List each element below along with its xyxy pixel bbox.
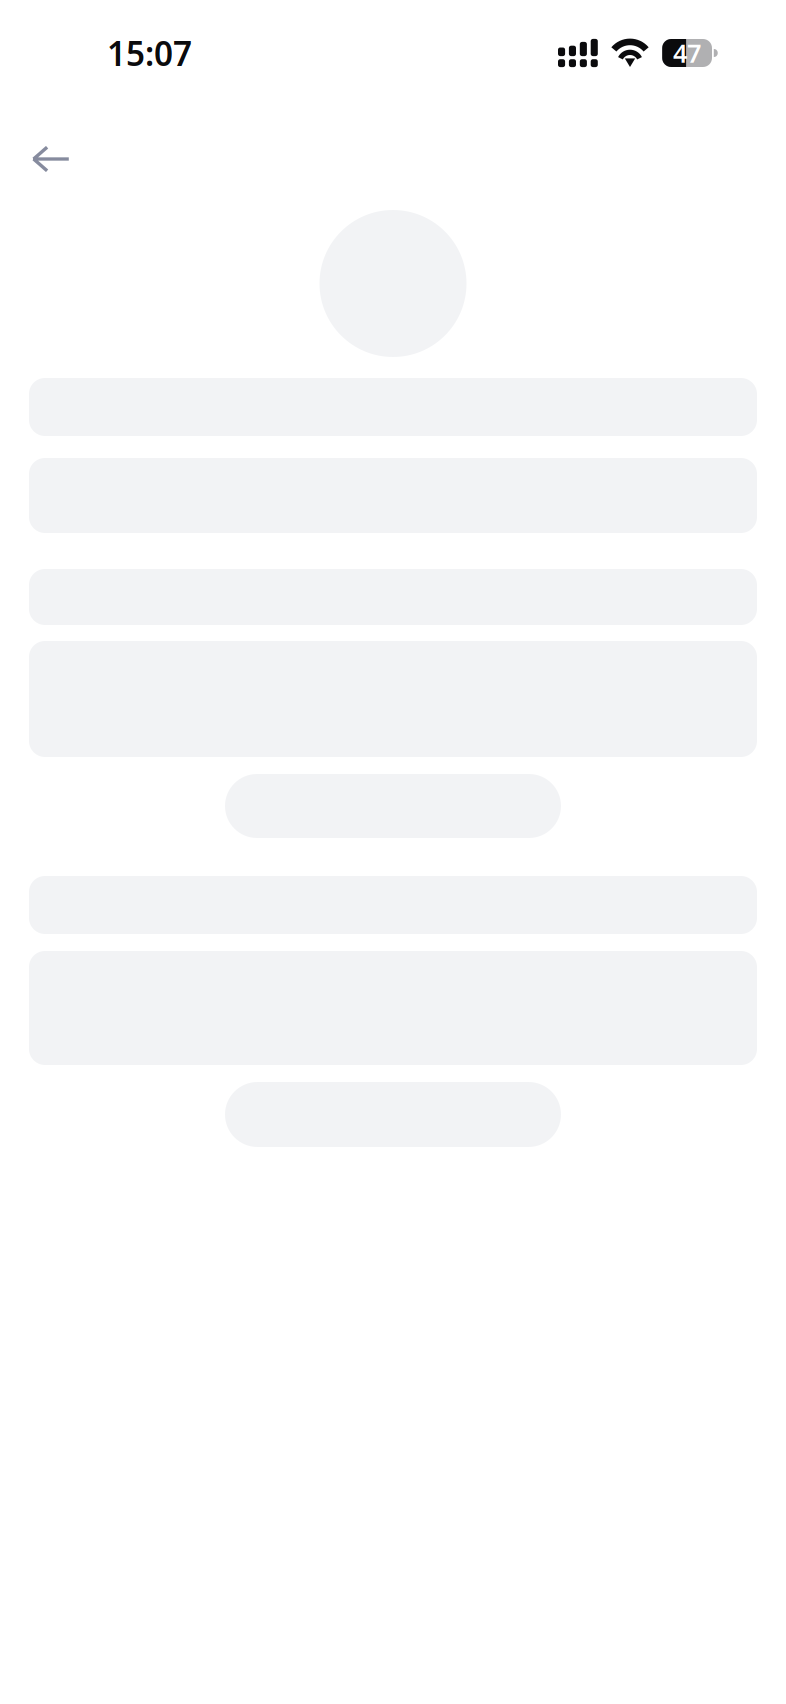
button[interactable]: Back <box>0 103 93 188</box>
staticText: 47 <box>673 36 701 70</box>
staticText: 15:07 <box>107 31 192 75</box>
